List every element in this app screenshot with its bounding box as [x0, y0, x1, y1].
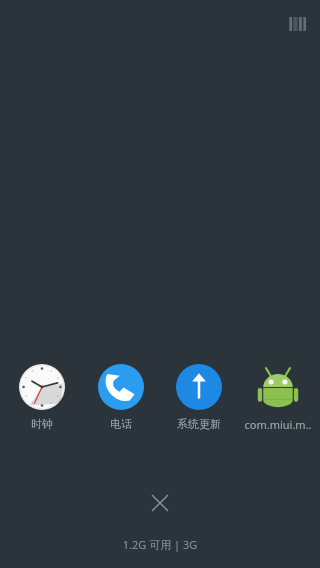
button[interactable]: System update [163, 362, 235, 433]
button[interactable]: Phone [85, 362, 157, 433]
staticText: 1.2G 可用 | 3G [0, 537, 320, 552]
button[interactable]: Android app [242, 362, 314, 434]
staticText: 时钟 [31, 417, 53, 431]
staticText: 电话 [110, 417, 132, 431]
button[interactable]: Clock [6, 362, 78, 433]
staticText: com.miui.m.. [244, 417, 312, 432]
button[interactable]: Close all apps [139, 482, 181, 524]
button[interactable]: Memory status [282, 8, 314, 40]
staticText: 系统更新 [177, 417, 221, 431]
